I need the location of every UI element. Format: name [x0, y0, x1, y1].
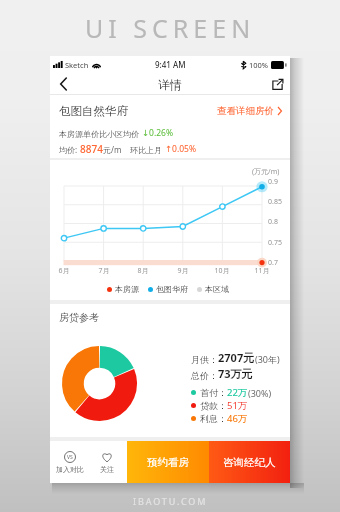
- staticText: 10月: [214, 266, 230, 276]
- staticText: 0.75: [268, 238, 282, 248]
- staticText: 加入对比: [56, 465, 84, 474]
- staticText: 本房源: [115, 284, 139, 294]
- button[interactable]: 本房源: [107, 284, 139, 294]
- staticText: VS: [67, 454, 73, 461]
- staticText: 46万: [227, 412, 248, 425]
- staticText: 首付：: [200, 387, 227, 398]
- button[interactable]: 包图华府: [148, 284, 188, 294]
- staticText: (万元/m): [252, 167, 280, 177]
- staticText: 51万: [227, 399, 248, 412]
- staticText: 0.7: [268, 258, 278, 268]
- staticText: 11月: [254, 266, 270, 276]
- button[interactable]: 查看详细房价: [217, 105, 282, 117]
- staticText: 7月: [98, 266, 110, 276]
- staticText: 详情: [158, 77, 182, 92]
- staticText: 总价：: [191, 370, 218, 381]
- staticText: 咨询经纪人: [223, 456, 276, 469]
- staticText: 房贷参考: [59, 311, 99, 324]
- staticText: 查看详细房价: [217, 105, 274, 117]
- staticText: 月供：: [191, 354, 218, 365]
- staticText: 0.9: [268, 177, 278, 187]
- staticText: 预约看房: [147, 456, 189, 469]
- staticText: 包图自然华府: [59, 104, 128, 118]
- staticText: ↑0.05%: [165, 143, 197, 155]
- staticText: 0.85: [268, 197, 282, 207]
- staticText: 9:41 AM: [155, 59, 186, 70]
- staticText: 环比上月: [130, 144, 165, 155]
- button[interactable]: Back: [50, 73, 76, 95]
- staticText: 0.8: [268, 217, 278, 227]
- button[interactable]: 关注: [89, 451, 125, 474]
- staticText: 本区域: [205, 284, 229, 294]
- button[interactable]: 预约看房: [127, 441, 209, 483]
- staticText: Sketch: [65, 60, 89, 70]
- staticText: 9月: [177, 266, 189, 276]
- staticText: 6月: [58, 266, 70, 276]
- staticText: 包图华府: [156, 284, 188, 294]
- staticText: ↓0.26%: [142, 127, 174, 139]
- staticText: (30年): [255, 353, 280, 365]
- button[interactable]: Share: [264, 73, 290, 95]
- staticText: 利息：: [200, 413, 227, 424]
- staticText: 均价:: [59, 144, 80, 155]
- staticText: UI SCREEN: [85, 11, 256, 45]
- button[interactable]: 咨询经纪人: [209, 441, 290, 483]
- staticText: 元/m: [103, 144, 122, 155]
- staticText: 贷款：: [200, 400, 227, 411]
- staticText: IBAOTU.COM: [133, 495, 208, 507]
- staticText: 22万: [227, 386, 248, 399]
- staticText: 本房源单价比小区均价: [59, 128, 142, 139]
- staticText: 8月: [137, 266, 149, 276]
- staticText: 100%: [249, 60, 269, 70]
- button[interactable]: VS: [52, 451, 88, 474]
- staticText: 关注: [100, 465, 114, 474]
- staticText: 8874: [80, 142, 103, 156]
- button[interactable]: 本区域: [197, 284, 229, 294]
- staticText: 2707元: [218, 350, 255, 365]
- staticText: 73万元: [218, 366, 253, 381]
- staticText: (30%): [248, 387, 272, 399]
